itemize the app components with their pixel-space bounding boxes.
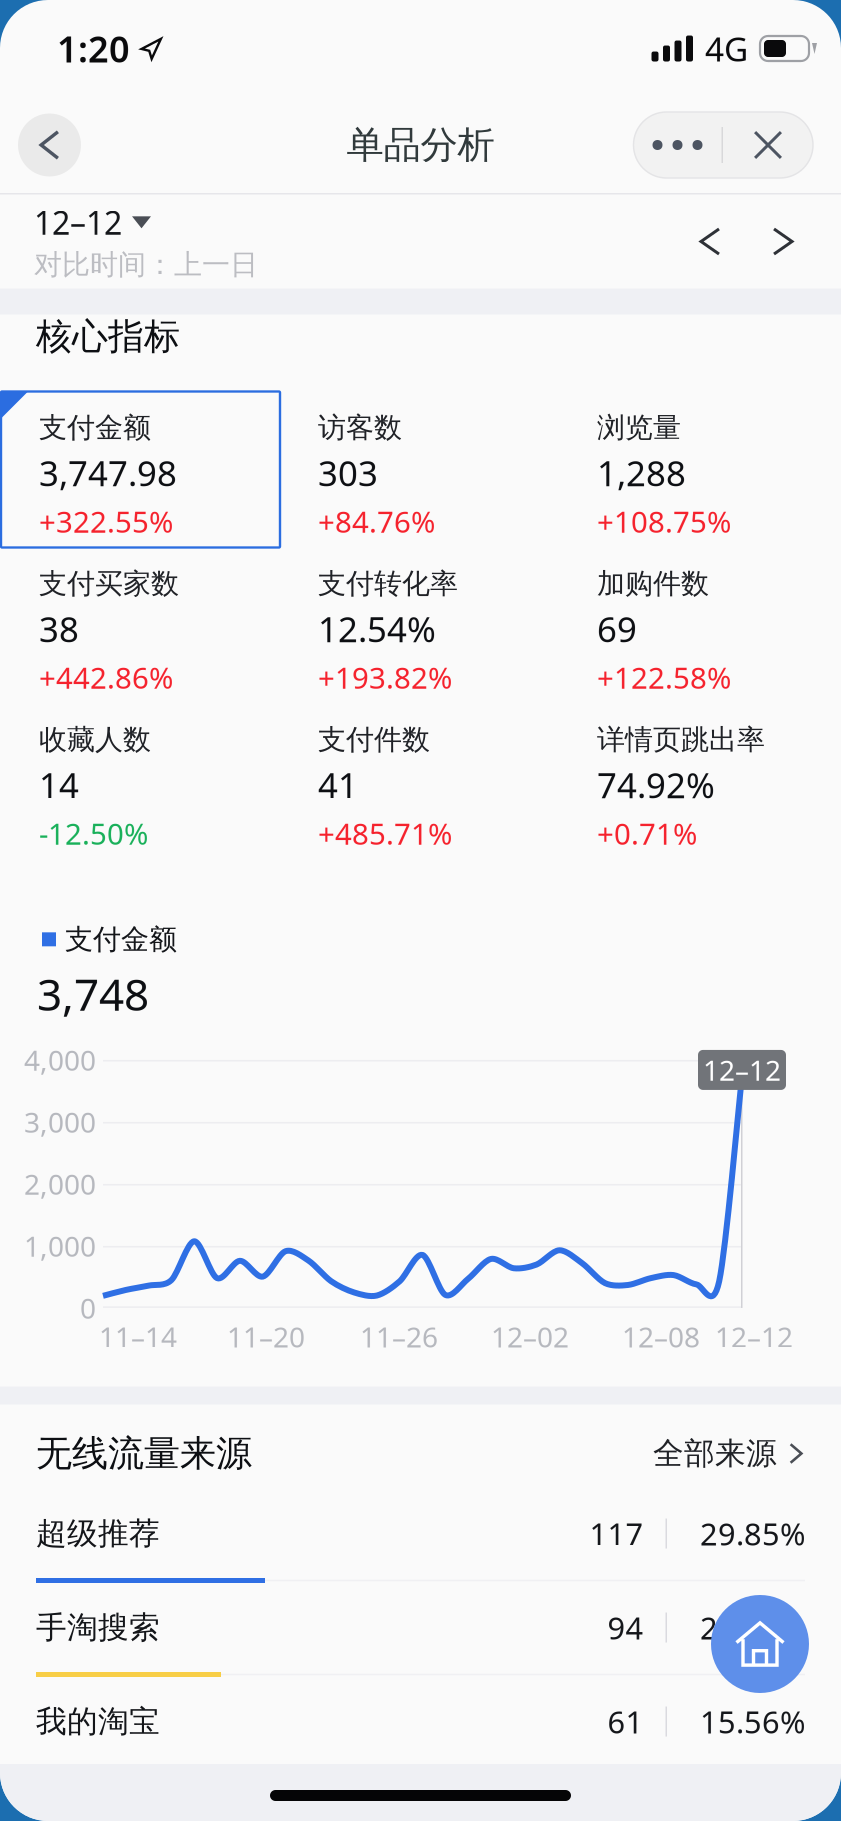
staticText: 浏览量 (597, 410, 681, 445)
button[interactable]: Home (711, 1595, 809, 1693)
button[interactable]: 详情页跳出率 (559, 703, 838, 859)
staticText: 支付件数 (318, 722, 430, 757)
staticText: 3,000 (24, 1103, 96, 1140)
staticText: 29.85% (700, 1513, 805, 1554)
button[interactable]: 收藏人数 (1, 703, 280, 859)
staticText: 加购件数 (597, 566, 709, 601)
staticText: 支付金额 (65, 922, 177, 956)
button[interactable]: 支付买家数 (1, 547, 280, 703)
staticText: 69 (597, 606, 637, 652)
button[interactable]: 手淘搜索 (0, 1596, 841, 1690)
staticText: 11–20 (227, 1318, 305, 1355)
staticText: 23.98% (700, 1607, 805, 1648)
staticText: 38 (39, 606, 79, 652)
staticText: 支付买家数 (39, 566, 179, 601)
staticText: 12–12 (715, 1318, 793, 1355)
staticText: 2,000 (24, 1165, 96, 1202)
staticText: 支付转化率 (318, 566, 458, 601)
button[interactable]: Close (723, 112, 813, 178)
button[interactable]: Back (18, 113, 81, 176)
staticText: 收藏人数 (39, 722, 151, 757)
staticText: +0.71% (597, 814, 697, 853)
staticText: 单品分析 (346, 122, 494, 168)
staticText: 12–08 (622, 1318, 700, 1355)
staticText: 1:20 (57, 25, 130, 72)
staticText: 12–12 (34, 201, 122, 244)
staticText: +84.76% (318, 502, 435, 541)
button[interactable]: Previous day (673, 209, 747, 273)
button[interactable]: More (633, 112, 721, 178)
staticText: 无线流量来源 (36, 1431, 252, 1476)
staticText: -12.50% (39, 814, 148, 853)
staticText: 15.56% (700, 1701, 805, 1742)
staticText: 支付金额 (39, 410, 151, 445)
staticText: 12–12 (703, 1051, 781, 1088)
staticText: 3,748 (37, 964, 149, 1023)
staticText: 41 (318, 762, 358, 808)
button[interactable]: 超级推荐 (0, 1502, 841, 1596)
staticText: 11–26 (360, 1318, 438, 1355)
button[interactable]: 浏览量 (559, 391, 838, 547)
staticText: 94 (607, 1607, 643, 1648)
staticText: +442.86% (39, 658, 173, 697)
staticText: 14 (39, 762, 79, 808)
button[interactable]: 支付件数 (280, 703, 559, 859)
staticText: 4,000 (24, 1041, 96, 1078)
staticText: 117 (589, 1513, 643, 1554)
staticText: 12–02 (491, 1318, 569, 1355)
button[interactable]: 支付金额 (1, 391, 280, 547)
staticText: 12.54% (318, 606, 436, 652)
staticText: +322.55% (39, 502, 173, 541)
staticText: 11–14 (99, 1318, 177, 1355)
staticText: 手淘搜索 (36, 1609, 160, 1646)
staticText: 0 (80, 1289, 96, 1326)
staticText: 我的淘宝 (36, 1703, 160, 1740)
button[interactable]: 访客数 (280, 391, 559, 547)
staticText: 74.92% (597, 762, 715, 808)
button[interactable]: 支付转化率 (280, 547, 559, 703)
staticText: 1,000 (24, 1227, 96, 1264)
staticText: 303 (318, 450, 378, 496)
button[interactable]: Next day (747, 209, 819, 273)
staticText: +108.75% (597, 502, 731, 541)
staticText: +485.71% (318, 814, 452, 853)
staticText: 3,747.98 (39, 450, 177, 496)
staticText: 访客数 (318, 410, 402, 445)
staticText: 4G (705, 26, 748, 71)
staticText: +122.58% (597, 658, 731, 697)
staticText: 全部来源 (653, 1435, 777, 1472)
staticText: 详情页跳出率 (597, 722, 765, 757)
button[interactable]: 12–12 (34, 201, 151, 244)
staticText: 核心指标 (36, 314, 180, 359)
staticText: +193.82% (318, 658, 452, 697)
button[interactable]: 全部来源 (653, 1435, 805, 1472)
staticText: 1,288 (597, 450, 686, 496)
button[interactable]: 我的淘宝 (0, 1690, 841, 1792)
staticText: 61 (607, 1701, 643, 1742)
button[interactable]: 加购件数 (559, 547, 838, 703)
staticText: 超级推荐 (36, 1515, 160, 1552)
staticText: 对比时间：上一日 (34, 248, 258, 282)
